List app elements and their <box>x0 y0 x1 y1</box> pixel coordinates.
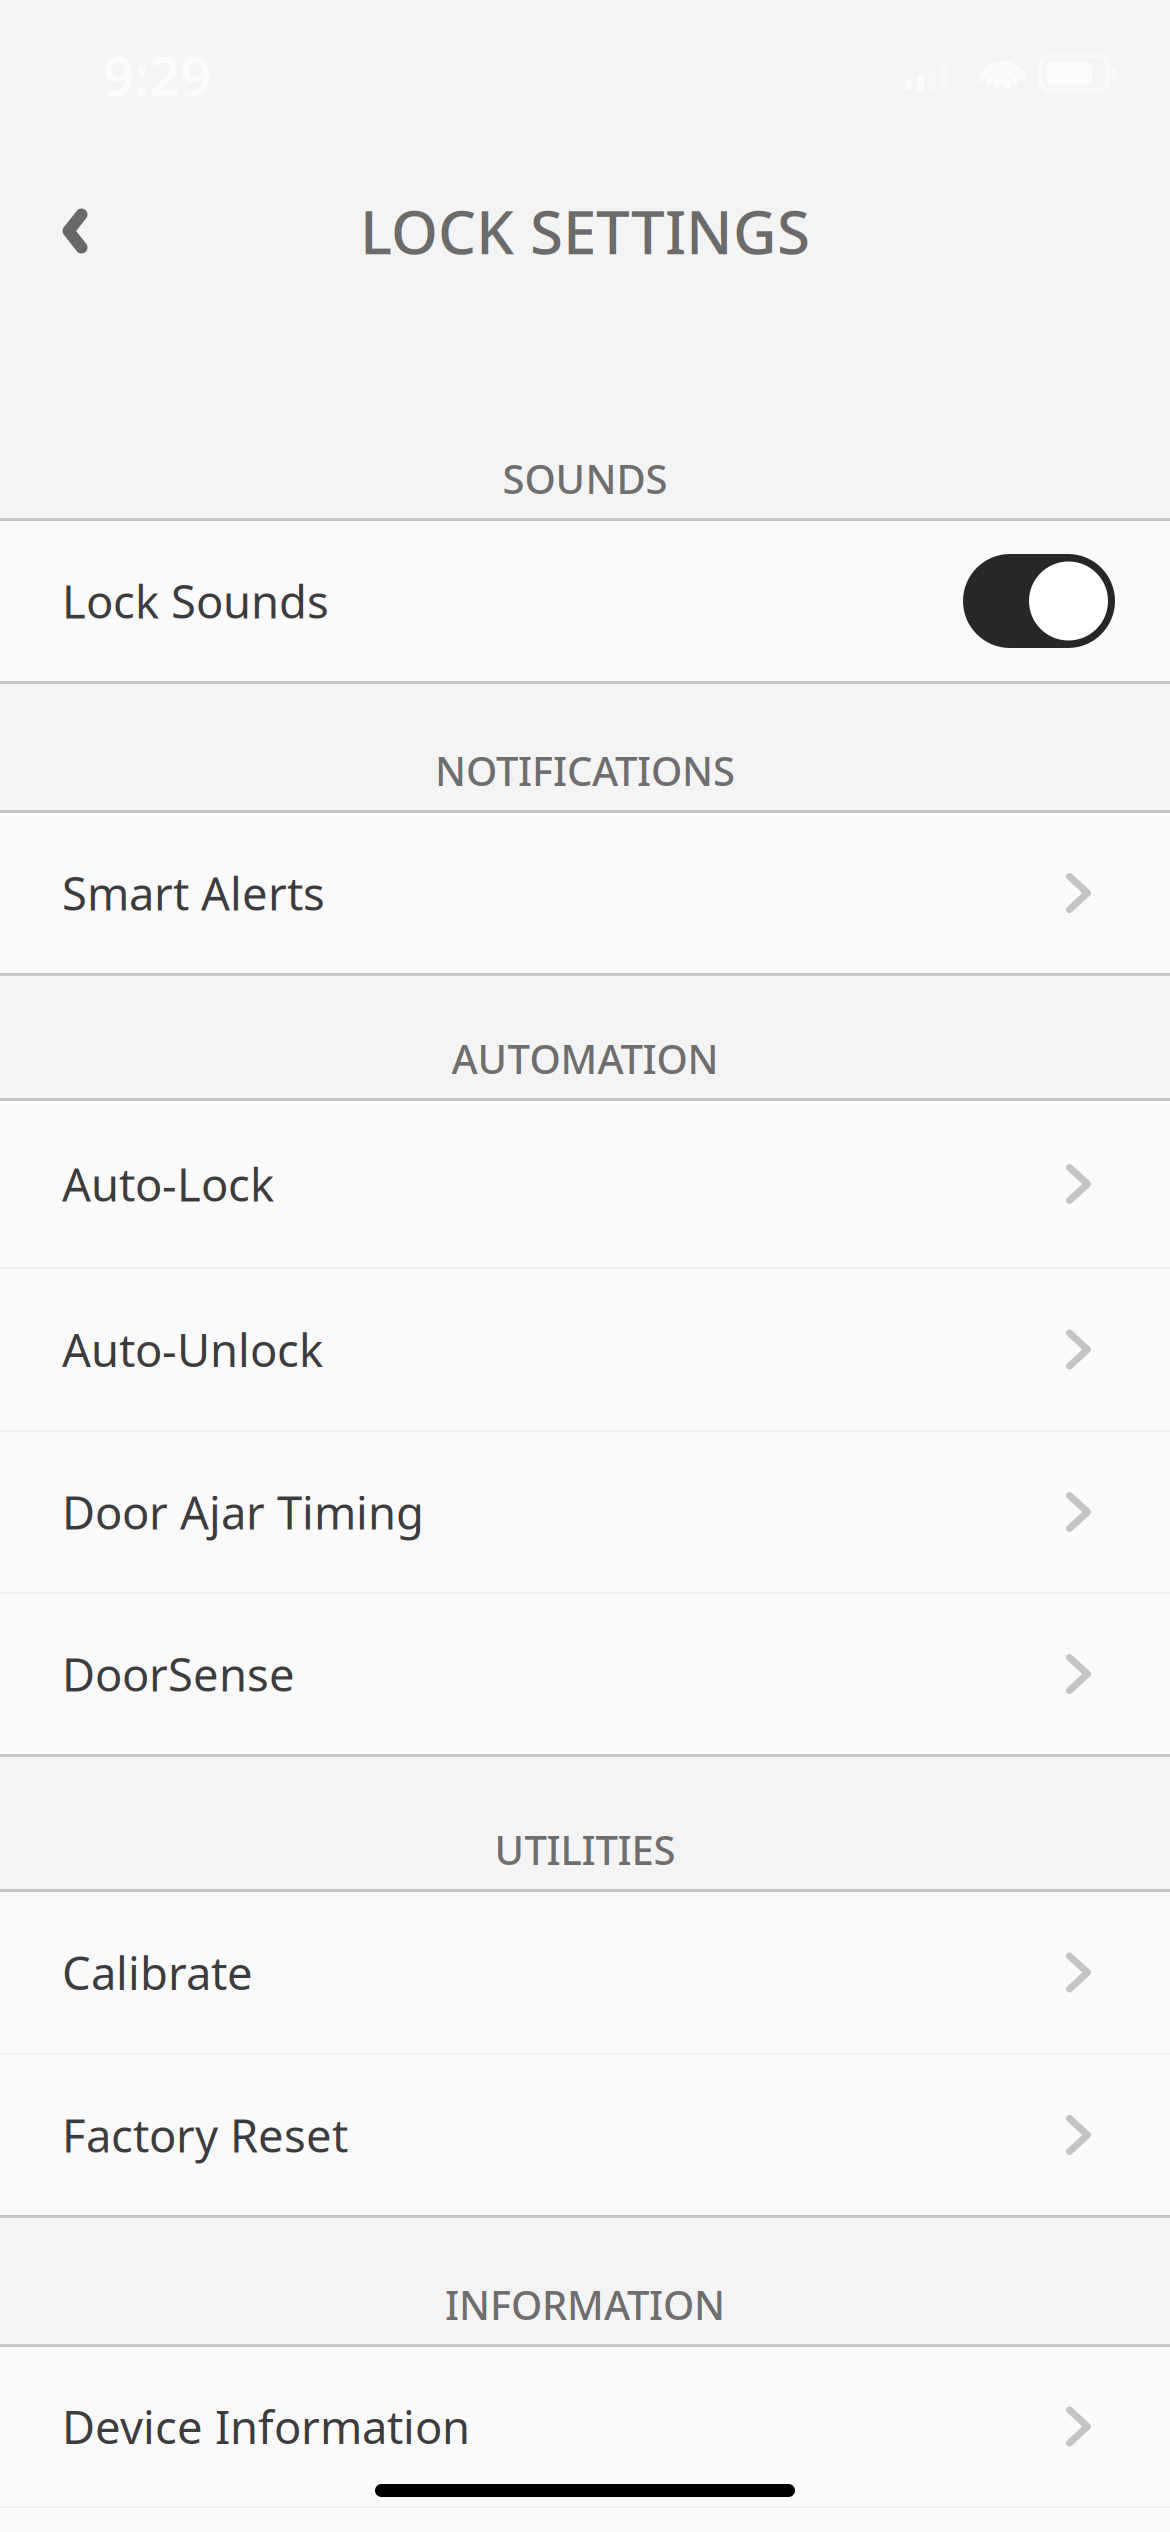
button[interactable]: Back <box>25 179 125 283</box>
staticText: UTILITIES <box>494 1823 675 1876</box>
staticText: AUTOMATION <box>451 1032 718 1085</box>
button[interactable]: DoorSense <box>0 1594 1170 1757</box>
staticText: DoorSense <box>62 1644 295 1704</box>
staticText: Lock Sounds <box>62 571 329 631</box>
staticText: Factory Reset <box>62 2105 348 2165</box>
button[interactable]: Lock Sounds <box>963 554 1115 648</box>
button[interactable]: Auto-Unlock <box>0 1269 1170 1432</box>
staticText: Door Ajar Timing <box>62 1482 424 1542</box>
staticText: SOUNDS <box>502 452 667 505</box>
staticText: Smart Alerts <box>62 863 325 923</box>
staticText: INFORMATION <box>445 2278 725 2331</box>
button[interactable]: Auto-Lock <box>0 1101 1170 1269</box>
button[interactable]: Calibrate <box>0 1892 1170 2055</box>
button[interactable]: Device Information <box>0 2347 1170 2508</box>
staticText: NOTIFICATIONS <box>435 744 735 797</box>
staticText: Auto-Lock <box>62 1154 274 1214</box>
staticText: Auto-Unlock <box>62 1319 323 1380</box>
staticText: Device Information <box>62 2396 470 2457</box>
button[interactable]: Door Ajar Timing <box>0 1432 1170 1594</box>
staticText: LOCK SETTINGS <box>360 191 810 271</box>
button[interactable]: Smart Alerts <box>0 813 1170 976</box>
button[interactable]: Factory Reset <box>0 2055 1170 2218</box>
staticText: Calibrate <box>62 1942 253 2003</box>
